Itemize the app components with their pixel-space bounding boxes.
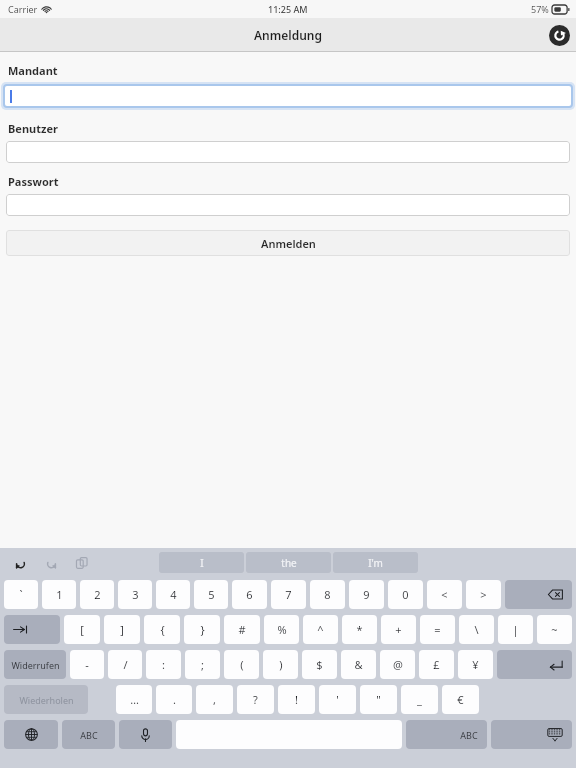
button[interactable]: +: [381, 615, 416, 644]
button[interactable]: >: [466, 580, 501, 609]
button[interactable]: ^: [303, 615, 338, 644]
button[interactable]: $: [302, 650, 337, 679]
button[interactable]: %: [264, 615, 299, 644]
button[interactable]: Tabulator: [4, 615, 60, 644]
staticText: !: [295, 692, 298, 707]
staticText: #: [238, 622, 246, 637]
staticText: *: [356, 622, 363, 637]
button[interactable]: (: [224, 650, 259, 679]
button[interactable]: !: [278, 685, 315, 714]
staticText: 4: [170, 587, 177, 602]
button[interactable]: 9: [349, 580, 384, 609]
button[interactable]: I'm: [333, 552, 418, 573]
staticText: Anmelden: [261, 236, 316, 251]
staticText: -: [85, 657, 89, 672]
staticText: .: [173, 692, 176, 707]
button[interactable]: I: [159, 552, 244, 573]
button[interactable]: Widerrufen: [4, 650, 66, 679]
staticText: $: [316, 657, 323, 672]
staticText: 2: [94, 587, 101, 602]
staticText: £: [433, 657, 440, 672]
button[interactable]: Anmelden: [6, 230, 570, 256]
button[interactable]: 5: [194, 580, 228, 609]
staticText: @: [393, 657, 403, 672]
button[interactable]: Diktieren: [119, 720, 172, 749]
button[interactable]: -: [70, 650, 104, 679]
staticText: _: [417, 692, 422, 707]
button[interactable]: #: [224, 615, 260, 644]
button[interactable]: ': [319, 685, 356, 714]
button[interactable]: ]: [104, 615, 140, 644]
button[interactable]: …: [116, 685, 152, 714]
button[interactable]: ;: [185, 650, 220, 679]
button[interactable]: Löschen: [505, 580, 572, 609]
button[interactable]: ?: [237, 685, 274, 714]
staticText: %: [277, 622, 287, 637]
button[interactable]: 6: [232, 580, 267, 609]
staticText: ^: [317, 622, 324, 637]
button[interactable]: }: [184, 615, 220, 644]
button[interactable]: Aktualisieren: [549, 25, 570, 46]
staticText: 9: [363, 587, 370, 602]
button[interactable]: *: [342, 615, 377, 644]
button[interactable]: ": [360, 685, 397, 714]
staticText: €: [457, 692, 464, 707]
staticText: the: [281, 556, 297, 570]
button[interactable]: .: [156, 685, 192, 714]
button[interactable]: 8: [310, 580, 345, 609]
staticText: Benutzer: [8, 121, 58, 136]
button[interactable]: _: [401, 685, 438, 714]
button[interactable]: ,: [196, 685, 233, 714]
staticText: Anmeldung: [254, 27, 322, 43]
button[interactable]: |: [498, 615, 533, 644]
staticText: Wiederholen: [19, 694, 74, 706]
staticText: ): [279, 657, 283, 672]
button[interactable]: Rückgängig: [10, 553, 30, 573]
button[interactable]: ABC: [406, 720, 487, 749]
button[interactable]: £: [419, 650, 454, 679]
button[interactable]: ~: [537, 615, 572, 644]
staticText: 0: [402, 587, 409, 602]
button[interactable]: ¥: [458, 650, 493, 679]
button[interactable]: `: [4, 580, 38, 609]
staticText: 11:25 AM: [268, 3, 308, 15]
button[interactable]: &: [341, 650, 376, 679]
staticText: 7: [285, 587, 292, 602]
button[interactable]: {: [144, 615, 180, 644]
button[interactable]: €: [442, 685, 479, 714]
button[interactable]: \: [459, 615, 494, 644]
button[interactable]: <: [427, 580, 462, 609]
button[interactable]: Wiederholen: [41, 553, 61, 573]
button[interactable]: :: [146, 650, 181, 679]
staticText: Mandant: [8, 63, 58, 78]
staticText: 57%: [531, 3, 549, 15]
button[interactable]: 4: [156, 580, 190, 609]
button[interactable]: the: [246, 552, 331, 573]
button[interactable]: @: [380, 650, 415, 679]
button[interactable]: 7: [271, 580, 306, 609]
staticText: 8: [324, 587, 331, 602]
button[interactable]: Wiederholen: [4, 685, 88, 714]
button[interactable]: [5, 86, 571, 106]
button[interactable]: [: [64, 615, 100, 644]
button[interactable]: Sprache wechseln: [4, 720, 58, 749]
staticText: <: [441, 587, 448, 602]
staticText: \: [474, 622, 479, 637]
button[interactable]: 3: [118, 580, 152, 609]
staticText: Passwort: [8, 174, 59, 189]
button[interactable]: =: [420, 615, 455, 644]
button[interactable]: /: [108, 650, 142, 679]
button[interactable]: 0: [388, 580, 423, 609]
button[interactable]: Eingabe: [497, 650, 572, 679]
button[interactable]: Einfügen: [72, 553, 92, 573]
button[interactable]: ): [263, 650, 298, 679]
button[interactable]: 1: [42, 580, 76, 609]
button[interactable]: 2: [80, 580, 114, 609]
button[interactable]: [6, 141, 570, 163]
button[interactable]: [6, 194, 570, 216]
button[interactable]: ABC: [62, 720, 115, 749]
staticText: 3: [132, 587, 139, 602]
button[interactable]: Tastatur ausblenden: [491, 720, 572, 749]
staticText: I: [200, 556, 204, 570]
